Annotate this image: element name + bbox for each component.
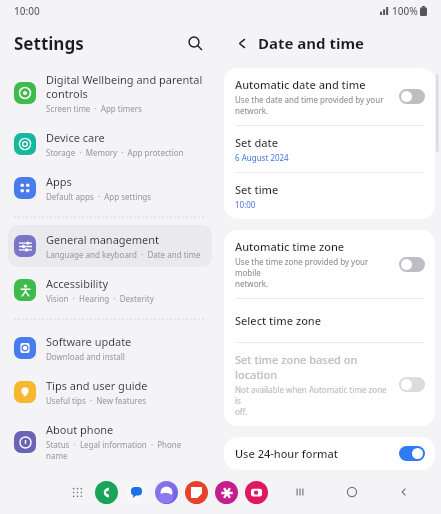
button[interactable]: Automatic time zone [224, 230, 435, 298]
staticText: Use 24-hour format [235, 446, 339, 461]
staticText: Digital Wellbeing and parental controls [46, 72, 203, 101]
button[interactable]: Messages [125, 481, 148, 504]
button[interactable]: Toggle [399, 89, 425, 104]
staticText: Automatic date and time [235, 77, 366, 92]
staticText: Set time [235, 182, 279, 197]
staticText: Screen time · App timers [46, 103, 142, 114]
button[interactable]: General management [8, 225, 212, 267]
staticText: Vision · Hearing · Dexterity [46, 293, 154, 304]
staticText: 100% [392, 4, 418, 18]
button[interactable]: Digital Wellbeing and parental controls [8, 65, 212, 121]
button[interactable]: Device care [8, 123, 212, 165]
button[interactable]: Notes [185, 481, 208, 504]
button[interactable]: Set time zone based on location [224, 343, 435, 426]
button[interactable]: Apps [8, 167, 212, 209]
staticText: Automatic time zone [235, 239, 345, 254]
staticText: Select time zone [235, 313, 322, 328]
button[interactable]: Select time zone [224, 299, 435, 342]
button[interactable]: All apps [66, 481, 88, 503]
staticText: About phone [46, 422, 114, 437]
staticText: Software update [46, 334, 132, 349]
staticText: Default apps · App settings [46, 191, 152, 202]
button[interactable]: Toggle [399, 446, 425, 461]
button[interactable]: Use 24-hour format [224, 437, 435, 470]
button[interactable]: Software update [8, 327, 212, 369]
button[interactable]: Set time [224, 173, 435, 219]
staticText: Language and keyboard · Date and time [46, 249, 201, 260]
staticText: General management [46, 232, 160, 247]
staticText: Device care [46, 130, 105, 145]
button[interactable]: Recents [287, 479, 313, 505]
staticText: Useful tips · New features [46, 395, 147, 406]
button[interactable]: Toggle [399, 257, 425, 272]
staticText: Apps [46, 174, 72, 189]
button[interactable]: Accessibility [8, 269, 212, 311]
staticText: Tips and user guide [46, 378, 148, 393]
staticText: 6 August 2024 [235, 152, 289, 163]
staticText: Not available when Automatic time zone i… [235, 384, 393, 417]
staticText: Status · Legal information · Phone name [46, 439, 204, 461]
staticText: Set time zone based on location [235, 352, 393, 382]
staticText: 10:00 [235, 199, 256, 210]
staticText: Set date [235, 135, 279, 150]
staticText: Storage · Memory · App protection [46, 147, 184, 158]
button[interactable]: Camera [245, 481, 268, 504]
staticText: Use the time zone provided by your mobil… [235, 256, 393, 289]
button[interactable]: Gallery [215, 481, 238, 504]
staticText: Download and install [46, 351, 125, 362]
button[interactable]: Back [391, 479, 417, 505]
button[interactable]: Home [339, 479, 365, 505]
staticText: Use the date and time provided by your n… [235, 94, 384, 116]
button[interactable]: Back [228, 29, 256, 57]
button[interactable]: Internet [155, 481, 178, 504]
button[interactable]: Search [180, 28, 210, 58]
staticText: 10:00 [14, 4, 40, 18]
staticText: Settings [14, 32, 84, 55]
staticText: Accessibility [46, 276, 109, 291]
staticText: Date and time [258, 33, 365, 53]
button[interactable]: About phone [8, 415, 212, 468]
button[interactable]: Automatic date and time [224, 68, 435, 125]
button[interactable]: Toggle [399, 377, 425, 392]
button[interactable]: Tips and user guide [8, 371, 212, 413]
button[interactable]: Set date [224, 126, 435, 172]
button[interactable]: Phone [95, 481, 118, 504]
